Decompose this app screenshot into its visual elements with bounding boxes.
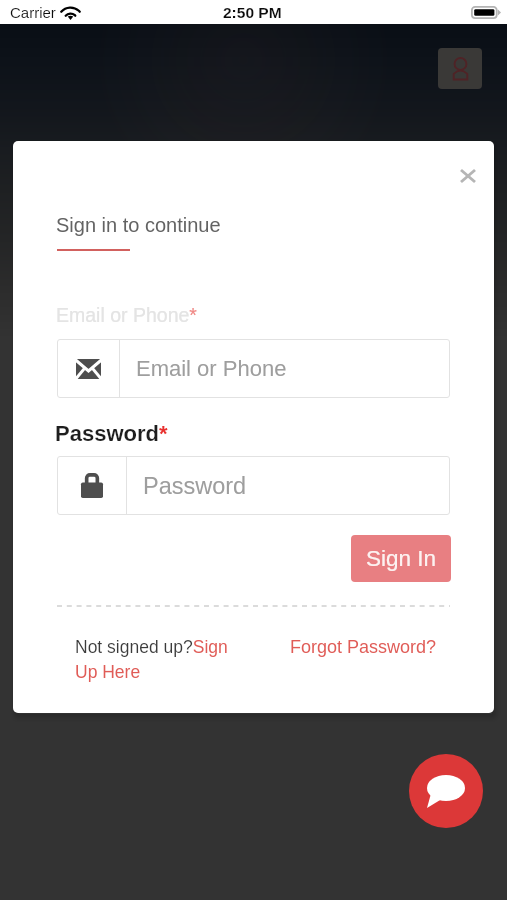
staticText: Password* xyxy=(55,421,168,446)
button[interactable]: Sign In xyxy=(351,535,451,582)
staticText: 2:50 PM xyxy=(223,4,282,21)
button[interactable]: Forgot Password? xyxy=(290,637,437,657)
button[interactable]: Profile xyxy=(438,48,482,89)
button[interactable]: Email or Phone xyxy=(57,339,450,398)
staticText: Carrier xyxy=(10,4,56,21)
button[interactable]: Not signed up?Sign Up Here xyxy=(75,637,231,682)
staticText: Sign in to continue xyxy=(56,214,221,236)
button[interactable]: Password xyxy=(57,456,450,515)
staticText: Email or Phone* xyxy=(56,304,197,326)
staticText: Not signed up?Sign Up Here xyxy=(75,637,231,682)
staticText: Forgot Password? xyxy=(290,637,437,657)
staticText: Sign In xyxy=(366,546,437,571)
button[interactable]: Chat xyxy=(409,754,483,828)
staticText: Email or Phone xyxy=(136,356,287,381)
staticText: Password xyxy=(143,473,247,499)
button[interactable]: Close xyxy=(448,156,488,196)
